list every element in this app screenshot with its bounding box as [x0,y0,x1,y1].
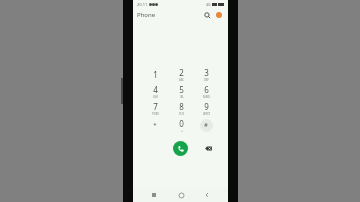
button[interactable]: 9 [194,101,218,115]
button[interactable]: 4 [143,84,167,98]
button[interactable]: Home [175,189,187,201]
button[interactable]: 7 [143,101,167,115]
button[interactable]: 1 [143,67,167,81]
staticText: * [153,121,157,129]
button[interactable]: * [143,118,167,132]
staticText: PQRS [152,112,159,115]
staticText: 9 [204,101,209,112]
staticText: 7 [153,101,158,112]
staticText: 5 [179,84,184,95]
staticText: 1 [153,69,158,80]
button[interactable]: Call [173,141,188,156]
staticText: 8 [179,101,184,112]
staticText: JKL [180,95,184,98]
button[interactable]: 2 [169,67,193,81]
staticText: DEF [204,78,209,81]
staticText: 4 [153,84,158,95]
staticText: 20:11 [137,2,148,7]
button[interactable]: Search [202,10,212,20]
staticText: + [181,129,183,132]
staticText: TUV [179,112,184,115]
staticText: Phone [137,11,156,19]
staticText: ABC [179,78,184,81]
button[interactable]: Recents [148,189,160,201]
staticText: 2 [179,67,184,78]
staticText: # [204,121,208,129]
button[interactable]: 5 [169,84,193,98]
staticText: 3 [204,67,209,78]
button[interactable]: 6 [194,84,218,98]
staticText: 4G [206,2,211,7]
button[interactable]: 3 [194,67,218,81]
staticText: MNO [203,95,210,98]
staticText: GHI [153,95,158,98]
button[interactable]: 8 [169,101,193,115]
button[interactable]: Account [214,10,224,20]
staticText: 0 [179,118,184,129]
button[interactable]: Backspace [202,142,214,154]
button[interactable]: Back [201,189,213,201]
button[interactable]: 0 [169,118,193,132]
staticText: 6 [204,84,209,95]
staticText: WXYZ [203,112,210,115]
button[interactable]: # [194,118,218,132]
